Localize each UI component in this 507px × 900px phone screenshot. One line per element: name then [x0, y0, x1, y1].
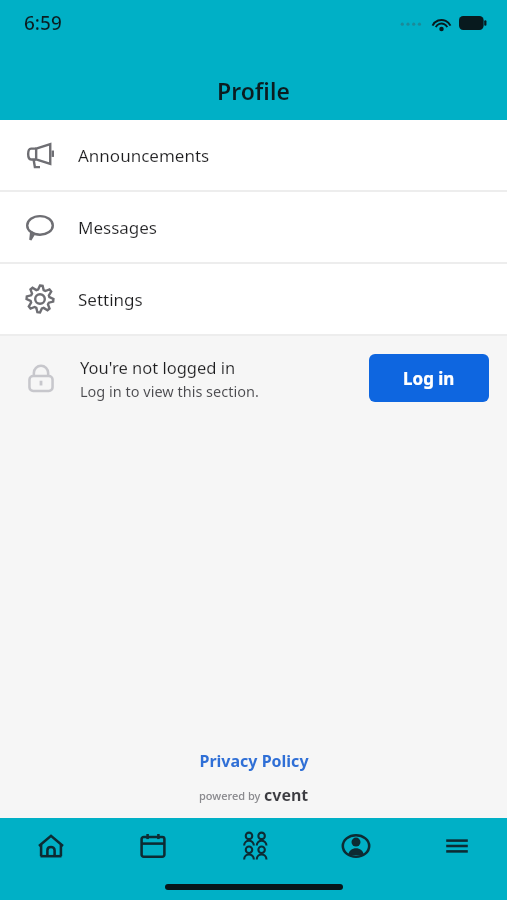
button[interactable]: Privacy Policy — [199, 750, 309, 772]
button[interactable]: Settings — [0, 264, 507, 334]
staticText: Log in to view this section. — [80, 381, 259, 401]
staticText: powered by — [199, 788, 264, 803]
staticText: Messages — [78, 216, 158, 239]
button[interactable]: Log in — [369, 354, 489, 402]
staticText: Log in — [403, 367, 455, 390]
button[interactable]: Calendar — [102, 818, 204, 874]
staticText: Settings — [78, 288, 143, 311]
button[interactable]: Attendees — [204, 818, 305, 874]
staticText: You're not logged in — [80, 356, 236, 378]
button[interactable]: Home — [0, 818, 102, 874]
button[interactable]: Profile — [305, 818, 406, 874]
button[interactable]: Announcements — [0, 120, 507, 190]
button[interactable]: Messages — [0, 192, 507, 262]
button[interactable]: More — [406, 818, 507, 874]
staticText: cvent — [264, 784, 309, 806]
staticText: 6:59 — [24, 10, 62, 36]
staticText: Announcements — [78, 144, 210, 167]
staticText: Profile — [217, 75, 290, 106]
